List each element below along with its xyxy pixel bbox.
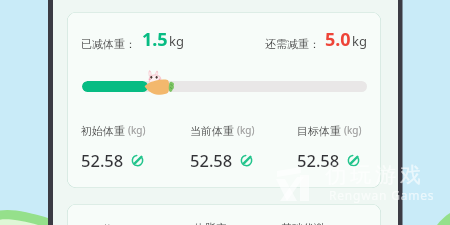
staticText: Rengwan Games	[329, 187, 435, 203]
staticText: (kg)	[344, 123, 362, 137]
staticText: 初始体重	[81, 124, 125, 138]
staticText: 52.58	[190, 149, 233, 171]
staticText: (kg)	[237, 123, 255, 137]
staticText: (kg)	[128, 123, 146, 137]
staticText: 目标体重	[297, 124, 341, 138]
staticText: kg	[169, 32, 184, 50]
button[interactable]: 目标体重	[297, 123, 381, 178]
staticText: 仂玩游戏	[323, 162, 423, 188]
staticText: 5.0	[325, 27, 351, 52]
staticText: 当前体重	[190, 124, 234, 138]
other: Edit weight	[240, 154, 253, 167]
other: Edit weight	[347, 154, 360, 167]
staticText: 1.5	[142, 27, 168, 52]
staticText: 还需减重：	[265, 37, 320, 51]
button[interactable]: 初始体重	[81, 123, 181, 178]
staticText: 已减体重：	[81, 37, 136, 51]
staticText: kg	[352, 32, 367, 50]
staticText: 体脂率	[194, 221, 227, 225]
button[interactable]: 当前体重	[190, 123, 290, 178]
other: Edit weight	[131, 154, 144, 167]
staticText: BMI值	[81, 221, 114, 225]
staticText: 基础代谢	[281, 221, 325, 225]
staticText: 52.58	[297, 149, 340, 171]
staticText: 52.58	[81, 149, 124, 171]
